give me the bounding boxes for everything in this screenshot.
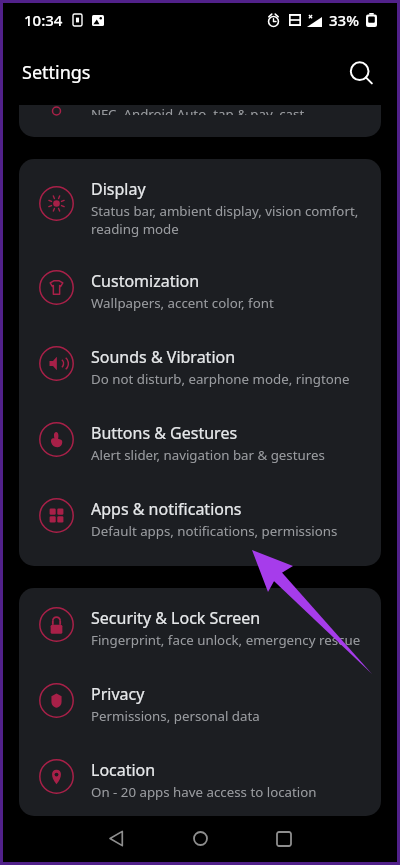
staticText: Security & Lock Screen <box>91 607 261 629</box>
staticText: On - 20 apps have access to location <box>91 783 317 801</box>
staticText: Fingerprint, face unlock, emergency resc… <box>91 631 361 649</box>
staticText: Settings <box>22 60 91 85</box>
button[interactable]: Sounds & Vibration <box>19 327 381 403</box>
button[interactable]: Security & Lock Screen <box>19 588 381 664</box>
staticText: Default apps, notifications, permissions <box>91 522 338 540</box>
staticText: Permissions, personal data <box>91 707 260 725</box>
staticText: Location <box>91 759 156 781</box>
button[interactable]: Buttons & Gestures <box>19 403 381 479</box>
staticText: Alert slider, navigation bar & gestures <box>91 446 325 464</box>
staticText: Privacy <box>91 683 145 705</box>
button[interactable]: NFC, Android Auto, tap & pay, cast <box>19 105 381 137</box>
button[interactable]: Privacy <box>19 664 381 740</box>
staticText: 10:34 <box>24 10 63 30</box>
staticText: Buttons & Gestures <box>91 422 238 444</box>
staticText: Sounds & Vibration <box>91 346 236 368</box>
button[interactable]: Customization <box>19 251 381 327</box>
staticText: Status bar, ambient display, vision comf… <box>91 202 359 238</box>
button[interactable]: Home <box>172 815 228 862</box>
button[interactable]: Apps & notifications <box>19 479 381 555</box>
button[interactable]: Display <box>19 159 381 251</box>
staticText: 33% <box>329 10 359 30</box>
button[interactable]: Back <box>88 815 144 862</box>
staticText: Do not disturb, earphone mode, ringtone <box>91 370 350 388</box>
button[interactable]: Recents <box>256 815 312 862</box>
button[interactable]: Location <box>19 740 381 816</box>
staticText: Customization <box>91 270 200 292</box>
staticText: Display <box>91 178 146 200</box>
staticText: NFC, Android Auto, tap & pay, cast <box>91 105 305 115</box>
button[interactable]: Search <box>341 53 381 93</box>
staticText: Apps & notifications <box>91 498 242 520</box>
staticText: Wallpapers, accent color, font <box>91 294 274 312</box>
